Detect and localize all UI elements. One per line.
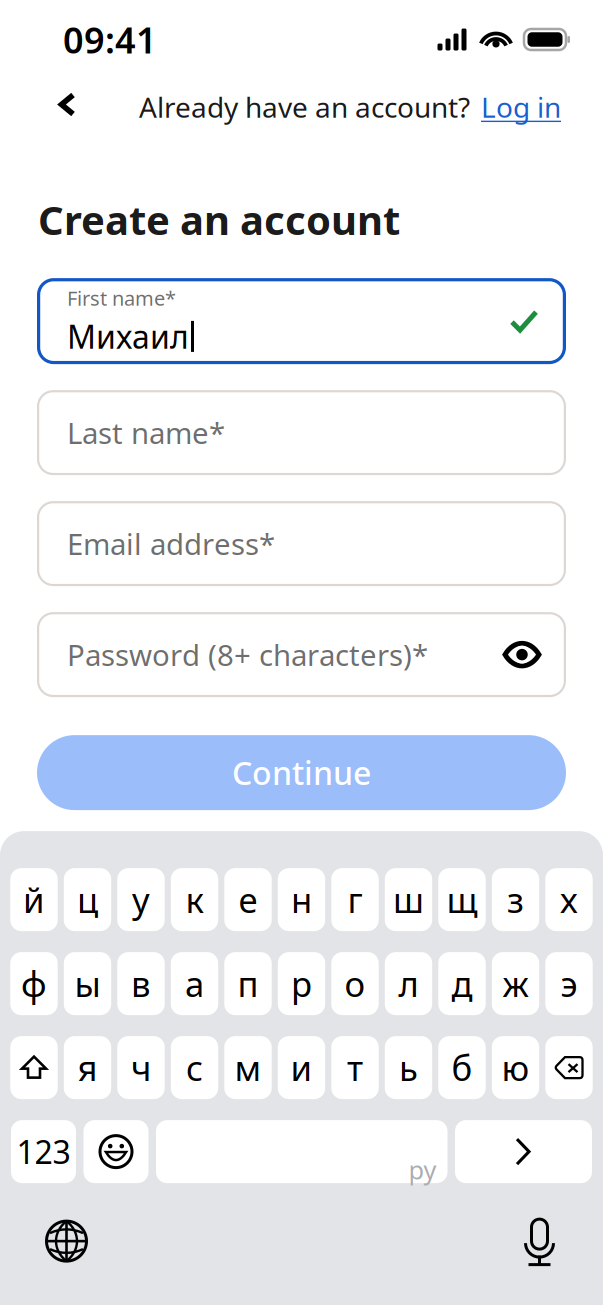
staticText: ь: [399, 1045, 418, 1091]
staticText: Password (8+ characters)*: [67, 635, 428, 674]
button[interactable]: и: [278, 1036, 325, 1099]
staticText: и: [290, 1045, 312, 1091]
button[interactable]: й: [10, 868, 58, 931]
button[interactable]: Back: [36, 79, 98, 135]
staticText: о: [344, 961, 365, 1007]
staticText: Email address*: [67, 524, 275, 563]
staticText: Last name*: [67, 413, 225, 452]
staticText: 09:41: [63, 16, 157, 63]
staticText: э: [560, 961, 577, 1007]
staticText: ч: [131, 1045, 151, 1091]
button[interactable]: Delete: [545, 1036, 593, 1099]
button[interactable]: ю: [492, 1036, 539, 1099]
staticText: Михаил: [67, 315, 189, 358]
staticText: Already have an account?: [139, 88, 470, 126]
staticText: й: [23, 877, 45, 923]
staticText: е: [238, 877, 257, 923]
staticText: л: [398, 961, 418, 1007]
button[interactable]: х: [545, 868, 593, 931]
button[interactable]: ь: [385, 1036, 432, 1099]
button[interactable]: щ: [438, 868, 486, 931]
staticText: з: [507, 877, 524, 923]
button[interactable]: з: [492, 868, 539, 931]
button[interactable]: р: [278, 952, 325, 1015]
button[interactable]: Emoji: [83, 1120, 148, 1183]
staticText: б: [451, 1045, 472, 1091]
staticText: г: [347, 877, 362, 923]
staticText: First name*: [67, 285, 176, 311]
button[interactable]: п: [224, 952, 272, 1015]
staticText: ш: [393, 877, 424, 923]
button[interactable]: л: [385, 952, 432, 1015]
button[interactable]: к: [171, 868, 218, 931]
staticText: м: [234, 1045, 261, 1091]
staticText: Create an account: [38, 193, 400, 246]
staticText: щ: [446, 877, 477, 923]
button[interactable]: д: [438, 952, 486, 1015]
staticText: у: [132, 877, 150, 923]
staticText: Continue: [232, 751, 371, 794]
button[interactable]: я: [64, 1036, 111, 1099]
staticText: ы: [74, 961, 100, 1007]
staticText: ю: [501, 1045, 529, 1091]
button[interactable]: ы: [64, 952, 111, 1015]
staticText: ру: [408, 1153, 436, 1186]
button[interactable]: Return: [455, 1120, 592, 1183]
button[interactable]: ф: [10, 952, 58, 1015]
button[interactable]: Continue: [37, 735, 566, 810]
button[interactable]: Log in: [470, 88, 561, 126]
button[interactable]: ш: [385, 868, 432, 931]
button[interactable]: ч: [117, 1036, 165, 1099]
button[interactable]: н: [278, 868, 325, 931]
staticText: д: [451, 961, 472, 1007]
staticText: ц: [77, 877, 98, 923]
button[interactable]: у: [117, 868, 165, 931]
button[interactable]: Change keyboard language: [29, 1208, 104, 1274]
button[interactable]: а: [171, 952, 218, 1015]
button[interactable]: с: [171, 1036, 218, 1099]
button[interactable]: Shift: [10, 1036, 58, 1099]
staticText: п: [237, 961, 258, 1007]
staticText: а: [185, 961, 204, 1007]
staticText: в: [131, 961, 151, 1007]
button[interactable]: е: [224, 868, 272, 931]
staticText: х: [560, 877, 578, 923]
staticText: 123: [16, 1130, 70, 1173]
staticText: р: [291, 961, 312, 1007]
button[interactable]: Space: [156, 1120, 447, 1183]
button[interactable]: Dictate: [502, 1208, 577, 1274]
staticText: н: [291, 877, 312, 923]
button[interactable]: г: [331, 868, 379, 931]
button[interactable]: б: [438, 1036, 486, 1099]
button[interactable]: в: [117, 952, 165, 1015]
staticText: ф: [21, 961, 47, 1007]
button[interactable]: м: [224, 1036, 272, 1099]
button[interactable]: э: [545, 952, 593, 1015]
staticText: т: [347, 1045, 363, 1091]
button[interactable]: ц: [64, 868, 111, 931]
staticText: к: [185, 877, 203, 923]
staticText: Log in: [481, 88, 561, 126]
staticText: я: [77, 1045, 97, 1091]
button[interactable]: т: [331, 1036, 379, 1099]
staticText: ж: [502, 961, 528, 1007]
button[interactable]: ж: [492, 952, 539, 1015]
button[interactable]: 123: [11, 1120, 76, 1183]
staticText: с: [186, 1045, 203, 1091]
button[interactable]: о: [331, 952, 379, 1015]
